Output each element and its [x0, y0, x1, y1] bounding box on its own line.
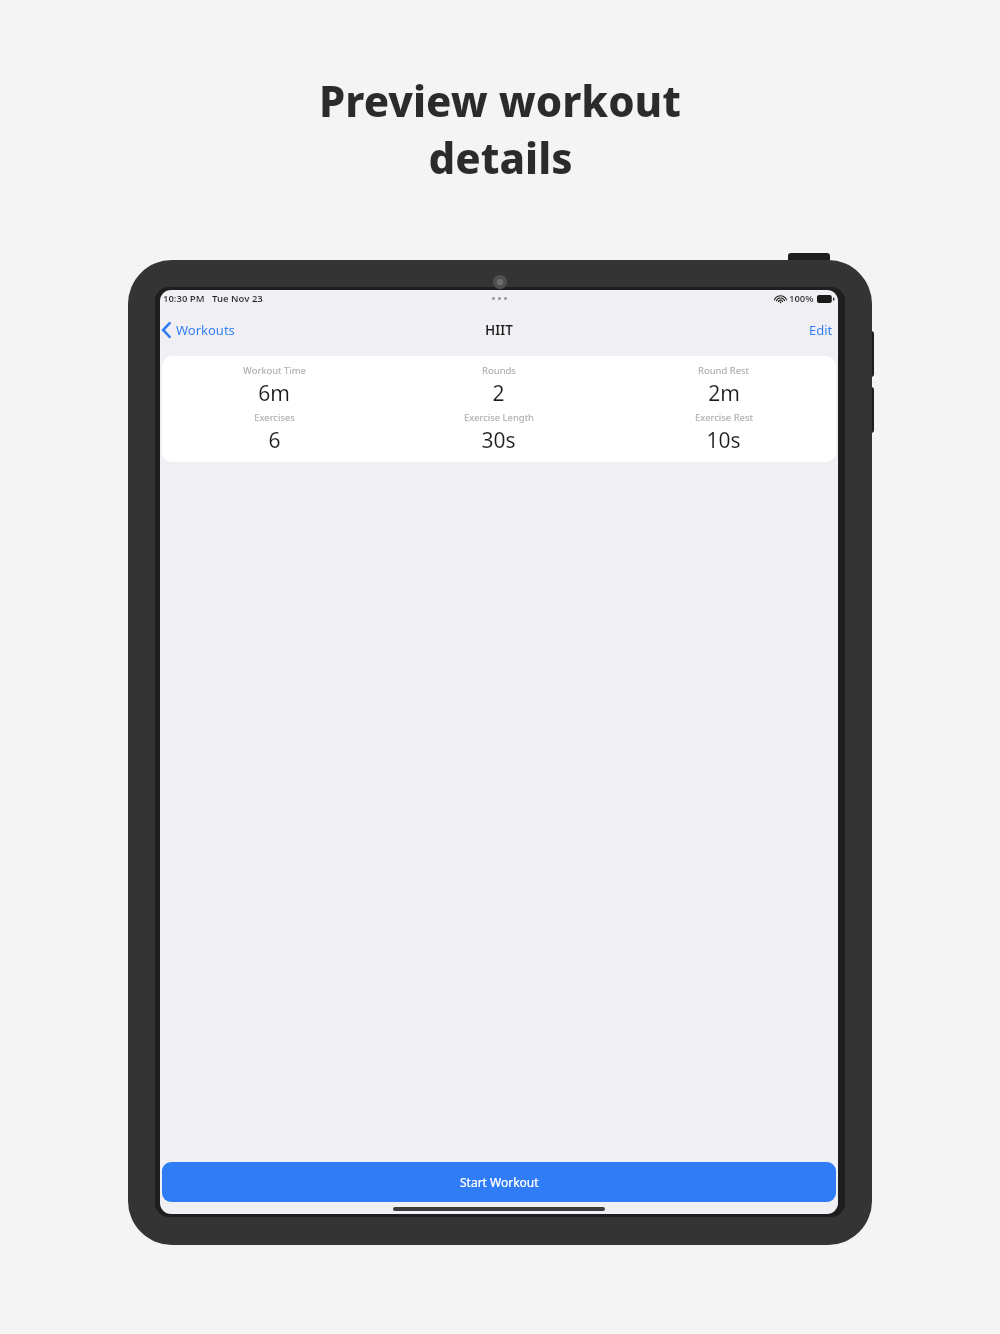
staticText: Rounds: [482, 364, 516, 377]
staticText: 100%: [789, 292, 814, 305]
button[interactable]: Workouts: [160, 315, 243, 345]
button[interactable]: Start Workout: [162, 1162, 836, 1202]
staticText: 2: [492, 379, 505, 408]
staticText: 2m: [708, 379, 740, 408]
staticText: Round Rest: [698, 364, 749, 377]
staticText: Preview workout: [319, 72, 681, 129]
staticText: 10s: [706, 426, 741, 455]
staticText: Exercises: [254, 411, 295, 424]
staticText: 30s: [481, 426, 516, 455]
staticText: Start Workout: [460, 1174, 539, 1190]
button[interactable]: Edit: [804, 313, 838, 347]
staticText: details: [428, 129, 573, 186]
staticText: Workouts: [176, 321, 235, 339]
staticText: Exercise Length: [464, 411, 534, 424]
staticText: 10:30 PM: [163, 292, 205, 305]
staticText: Edit: [809, 321, 833, 339]
staticText: Tue Nov 23: [212, 292, 263, 305]
staticText: Exercise Rest: [695, 411, 753, 424]
staticText: 6: [268, 426, 281, 455]
staticText: HIIT: [485, 321, 513, 339]
staticText: 6m: [258, 379, 290, 408]
staticText: Workout Time: [243, 364, 306, 377]
